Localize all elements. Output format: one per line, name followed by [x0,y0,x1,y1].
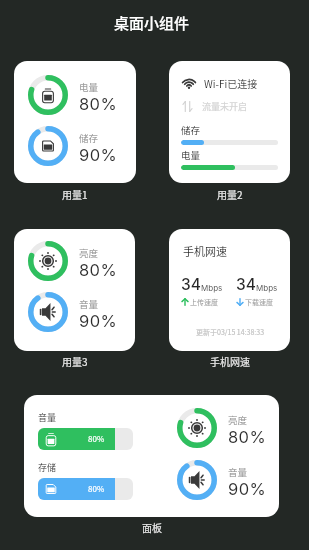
staticText: 90% [79,311,118,331]
staticText: 手机网速 [210,354,250,368]
staticText: 音量 [228,465,248,479]
staticText: 80% [88,433,105,445]
staticText: 下载速度 [245,297,273,307]
staticText: Mbps [201,283,223,293]
staticText: 90% [228,479,267,499]
staticText: 存储 [38,461,57,474]
staticText: 储存 [79,131,99,145]
button[interactable]: 手机网速 [169,229,290,351]
staticText: 音量 [79,297,99,311]
button[interactable]: 电量 [14,61,136,183]
staticText: Mbps [256,283,278,293]
staticText: 亮度 [79,246,99,260]
staticText: 上传速度 [190,297,218,307]
staticText: 面板 [142,520,162,534]
staticText: 80% [79,94,118,114]
staticText: 亮度 [228,413,248,427]
staticText: 用量2 [217,187,243,201]
staticText: 电量 [79,80,99,94]
staticText: 用量1 [62,187,88,201]
staticText: 手机网速 [183,243,227,259]
staticText: 80% [79,260,118,280]
button[interactable]: Wi-Fi已连接 [169,61,290,183]
staticText: 用量3 [62,354,88,368]
staticText: 34 [236,275,256,294]
staticText: 储存 [181,123,201,137]
staticText: 80% [88,483,105,495]
staticText: 桌面小组件 [114,12,190,34]
button[interactable]: 音量 [24,395,279,517]
staticText: 更新于03/15 14:38:33 [196,327,265,337]
staticText: 流量未开启 [202,100,248,113]
staticText: Wi-Fi已连接 [204,76,258,90]
staticText: 音量 [38,411,57,424]
staticText: 电量 [181,148,201,162]
button[interactable]: 亮度 [14,229,135,351]
staticText: 80% [228,427,267,447]
staticText: 90% [79,145,118,165]
staticText: 34 [181,275,201,294]
